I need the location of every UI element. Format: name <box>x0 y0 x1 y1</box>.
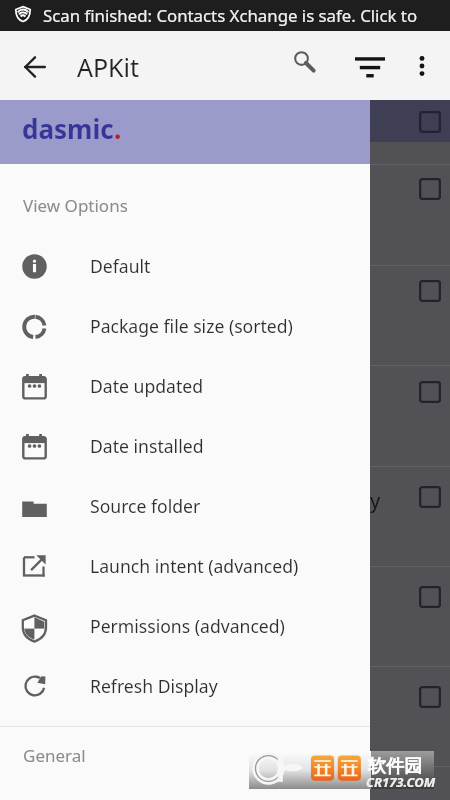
staticText: Permissions (advanced) <box>90 614 285 638</box>
button[interactable]: Source folder <box>0 476 370 536</box>
button[interactable] <box>0 466 450 566</box>
button[interactable]: Select app <box>419 280 441 302</box>
button[interactable]: More options <box>398 42 446 90</box>
staticText: General <box>23 744 86 767</box>
button[interactable]: Permissions (advanced) <box>0 596 370 656</box>
button[interactable]: Select app <box>419 178 441 200</box>
button[interactable]: Date updated <box>0 356 370 416</box>
button[interactable]: Sort <box>346 39 394 87</box>
button[interactable]: Launch intent (advanced) <box>0 536 370 596</box>
button[interactable]: Search <box>281 38 329 86</box>
button[interactable]: Select app <box>419 486 441 508</box>
staticText: Default <box>90 254 151 278</box>
button[interactable] <box>0 64 450 164</box>
button[interactable]: Date installed <box>0 416 370 476</box>
staticText: y <box>370 487 381 514</box>
staticText: Refresh Display <box>90 674 218 698</box>
staticText: APKit <box>77 50 140 82</box>
staticText: Date installed <box>90 434 204 458</box>
button[interactable] <box>0 666 450 766</box>
staticText: Launch intent (advanced) <box>90 554 299 578</box>
button[interactable] <box>0 265 450 365</box>
staticText: . <box>114 111 122 146</box>
staticText: View Options <box>23 194 128 217</box>
button[interactable] <box>0 566 450 666</box>
button[interactable] <box>0 365 450 466</box>
staticText: dasmic <box>22 111 114 146</box>
staticText: Scan finished: Contacts Xchange is safe.… <box>43 4 418 27</box>
staticText: Package file size (sorted) <box>90 314 293 338</box>
button[interactable]: Select app <box>419 686 441 708</box>
staticText: CR173.COM <box>366 773 436 791</box>
button[interactable] <box>0 164 450 265</box>
button[interactable]: Back <box>11 43 59 91</box>
button[interactable]: Refresh Display <box>0 656 370 716</box>
staticText: Source folder <box>90 494 201 518</box>
staticText: 软件园 <box>368 755 422 778</box>
button[interactable]: Package file size (sorted) <box>0 296 370 356</box>
staticText: Date updated <box>90 374 204 398</box>
button[interactable]: Select app <box>419 586 441 608</box>
button[interactable]: Select app <box>419 381 441 403</box>
button[interactable]: Select app <box>419 111 441 133</box>
button[interactable]: Default <box>0 236 370 296</box>
